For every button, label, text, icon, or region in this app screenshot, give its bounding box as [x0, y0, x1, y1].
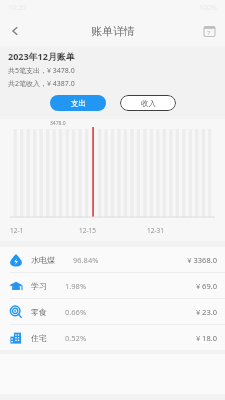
- staticText: 2023年12月账单: [8, 50, 75, 62]
- staticText: 收入: [141, 99, 156, 108]
- button[interactable]: Back: [0, 16, 30, 46]
- staticText: 100%: [199, 3, 217, 13]
- staticText: 12-31: [147, 226, 215, 235]
- staticText: 1.98%: [65, 281, 195, 291]
- button[interactable]: 水电煤: [0, 247, 225, 272]
- button[interactable]: 学习: [0, 273, 225, 298]
- staticText: 共2笔收入，¥ 4387.0: [8, 79, 75, 89]
- staticText: 账单详情: [91, 24, 135, 38]
- staticText: 学习: [31, 281, 47, 291]
- staticText: 共5笔支出，¥ 3478.0: [8, 66, 75, 76]
- button[interactable]: 住宅: [0, 325, 225, 350]
- staticText: ¥ 18.0: [195, 333, 217, 343]
- staticText: 零食: [31, 307, 47, 317]
- staticText: 住宅: [31, 333, 47, 343]
- staticText: 7: [207, 29, 211, 37]
- button[interactable]: Select month: [199, 21, 219, 41]
- staticText: 支出: [71, 99, 86, 108]
- staticText: 12-15: [79, 226, 147, 235]
- staticText: 12-1: [10, 226, 79, 235]
- button[interactable]: 支出: [50, 95, 106, 111]
- staticText: 10:20: [8, 3, 26, 13]
- staticText: ¥ 69.0: [195, 281, 217, 291]
- staticText: 水电煤: [31, 255, 55, 265]
- button[interactable]: 零食: [0, 299, 225, 324]
- staticText: ¥ 3368.0: [187, 255, 217, 265]
- staticText: 0.52%: [65, 333, 195, 343]
- staticText: 3478.0: [50, 120, 66, 127]
- staticText: 0.66%: [65, 307, 195, 317]
- button[interactable]: 收入: [120, 95, 176, 111]
- staticText: 96.84%: [73, 255, 187, 265]
- staticText: ¥ 23.0: [195, 307, 217, 317]
